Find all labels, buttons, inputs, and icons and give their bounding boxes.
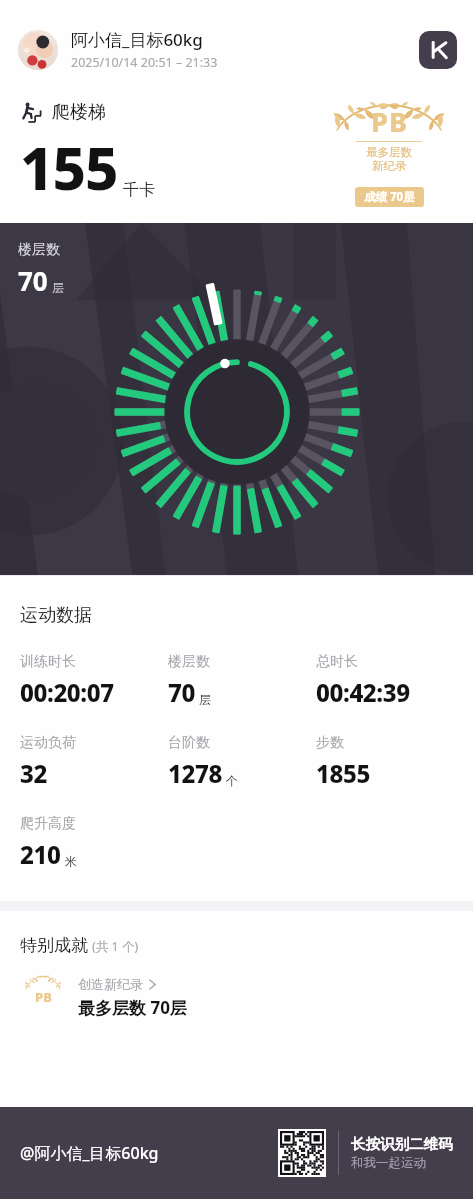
staticText: 最多层数 (366, 145, 412, 159)
staticText: PB (35, 988, 52, 1006)
staticText: 特别成就 (20, 935, 88, 956)
staticText: 最多层数 70层 (78, 996, 187, 1019)
staticText: 米 (65, 854, 77, 869)
staticText: 新纪录 (372, 159, 407, 173)
staticText: 层 (199, 692, 211, 707)
staticText: 千卡 (123, 180, 155, 200)
staticText: 成绩 70层 (364, 189, 415, 205)
staticText: 创造新纪录 (78, 976, 143, 992)
staticText: 爬楼梯 (52, 101, 106, 124)
staticText: 长按识别二维码 (351, 1135, 453, 1153)
staticText: 台阶数 (168, 734, 210, 752)
button[interactable]: PB (20, 974, 457, 1020)
staticText: PB (371, 103, 408, 140)
staticText: 32 (20, 757, 47, 790)
staticText: 00:20:07 (20, 676, 114, 709)
staticText: 2025/10/14 20:51 – 21:33 (71, 54, 218, 71)
button[interactable]: Keep (419, 31, 457, 69)
staticText: 楼层数 (168, 653, 210, 671)
staticText: (共 1 个) (92, 938, 139, 955)
staticText: 爬升高度 (20, 815, 76, 833)
staticText: 运动数据 (20, 604, 92, 627)
staticText: 运动负荷 (20, 734, 76, 752)
staticText: 70 (18, 263, 48, 298)
staticText: 步数 (316, 734, 344, 752)
staticText: 210 (20, 838, 61, 871)
staticText: 和我一起运动 (351, 1155, 426, 1171)
staticText: 155 (20, 128, 118, 207)
staticText: 楼层数 (18, 241, 60, 259)
staticText: 个 (226, 773, 238, 788)
staticText: 1855 (316, 757, 370, 790)
staticText: 00:42:39 (316, 676, 410, 709)
staticText: 70 (168, 676, 195, 709)
staticText: @阿小信_目标60kg (20, 1142, 159, 1164)
staticText: 1278 (168, 757, 222, 790)
staticText: 总时长 (316, 653, 358, 671)
staticText: 阿小信_目标60kg (71, 28, 203, 51)
staticText: 层 (52, 280, 64, 295)
staticText: 训练时长 (20, 653, 76, 671)
